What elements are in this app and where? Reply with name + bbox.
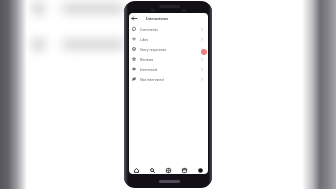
- staticText: Comments: [140, 27, 158, 32]
- staticText: Likes: [140, 37, 149, 42]
- button[interactable]: search: [144, 167, 160, 174]
- button[interactable]: Story responses: [129, 44, 208, 54]
- button[interactable]: home: [129, 167, 144, 174]
- staticText: Story responses: [140, 47, 167, 52]
- button[interactable]: Not interested: [129, 74, 208, 84]
- staticText: Interested: [140, 67, 158, 72]
- button[interactable]: shop: [176, 167, 192, 174]
- button[interactable]: reels: [160, 167, 176, 174]
- button[interactable]: profile: [192, 167, 208, 174]
- button[interactable]: Likes: [129, 34, 208, 44]
- button[interactable]: Comments: [129, 24, 208, 34]
- staticText: Not interested: [140, 77, 164, 82]
- button[interactable]: Interested: [129, 64, 208, 74]
- staticText: Reviews: [140, 57, 154, 62]
- staticText: Interactions: [146, 16, 169, 21]
- button[interactable]: Reviews: [129, 54, 208, 64]
- button[interactable]: Back: [129, 13, 140, 24]
